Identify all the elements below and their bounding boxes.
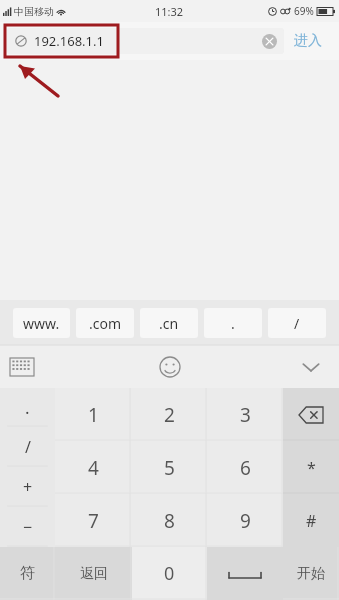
button[interactable]: Hide keyboard (299, 355, 323, 379)
button[interactable]: Emoji (159, 356, 181, 378)
staticText: 1 (88, 402, 99, 428)
button[interactable]: 符 (0, 547, 55, 600)
button[interactable]: 5 (131, 441, 207, 494)
staticText: 进入 (294, 32, 322, 50)
staticText: − (23, 516, 33, 538)
staticText: 开始 (297, 565, 325, 583)
staticText: 8 (164, 508, 175, 534)
staticText: 返回 (80, 565, 108, 583)
button[interactable]: 1 (55, 388, 131, 441)
button[interactable]: 9 (207, 494, 283, 547)
button[interactable]: Clear (262, 34, 277, 49)
button[interactable]: 3 (207, 388, 283, 441)
staticText: 中国移动 (14, 5, 54, 18)
staticText: 7 (88, 508, 99, 534)
button[interactable]: * (283, 441, 339, 494)
button[interactable]: .com (76, 308, 134, 338)
button[interactable]: Space (207, 547, 283, 600)
staticText: .com (89, 314, 122, 333)
staticText: * (307, 457, 316, 479)
button[interactable]: / (0, 427, 55, 467)
button[interactable]: Switch keyboard (10, 358, 34, 376)
button[interactable]: . (0, 388, 55, 427)
staticText: 4 (88, 455, 99, 481)
button[interactable]: 192.168.1.1 (7, 28, 284, 54)
staticText: 9 (240, 508, 251, 534)
staticText: 0 (164, 561, 175, 586)
staticText: 3 (240, 402, 251, 428)
button[interactable]: / (268, 308, 326, 338)
button[interactable]: www. (13, 308, 70, 338)
staticText: + (23, 476, 33, 498)
button[interactable]: 6 (207, 441, 283, 494)
button[interactable]: 进入 (284, 22, 332, 60)
button[interactable]: 2 (131, 388, 207, 441)
button[interactable]: .cn (140, 308, 198, 338)
staticText: / (294, 314, 300, 333)
button[interactable]: # (283, 494, 339, 547)
staticText: . (231, 314, 235, 333)
staticText: .cn (159, 314, 179, 333)
staticText: . (25, 396, 30, 419)
button[interactable]: 7 (55, 494, 131, 547)
staticText: 6 (240, 455, 251, 481)
staticText: 符 (20, 564, 35, 583)
staticText: 2 (164, 402, 175, 428)
staticText: www. (23, 314, 60, 333)
button[interactable]: + (0, 467, 55, 507)
staticText: 69% (294, 4, 314, 18)
button[interactable]: 8 (131, 494, 207, 547)
staticText: 5 (164, 455, 175, 481)
button[interactable]: − (0, 507, 55, 547)
button[interactable]: Backspace (283, 388, 339, 441)
button[interactable]: 0 (132, 547, 207, 600)
button[interactable]: 开始 (283, 547, 339, 600)
button[interactable]: 4 (55, 441, 131, 494)
button[interactable]: 返回 (55, 547, 132, 600)
staticText: / (25, 436, 31, 458)
staticText: 192.168.1.1 (34, 32, 104, 50)
button[interactable]: . (204, 308, 262, 338)
staticText: # (306, 510, 317, 532)
staticText: 11:32 (155, 4, 184, 19)
